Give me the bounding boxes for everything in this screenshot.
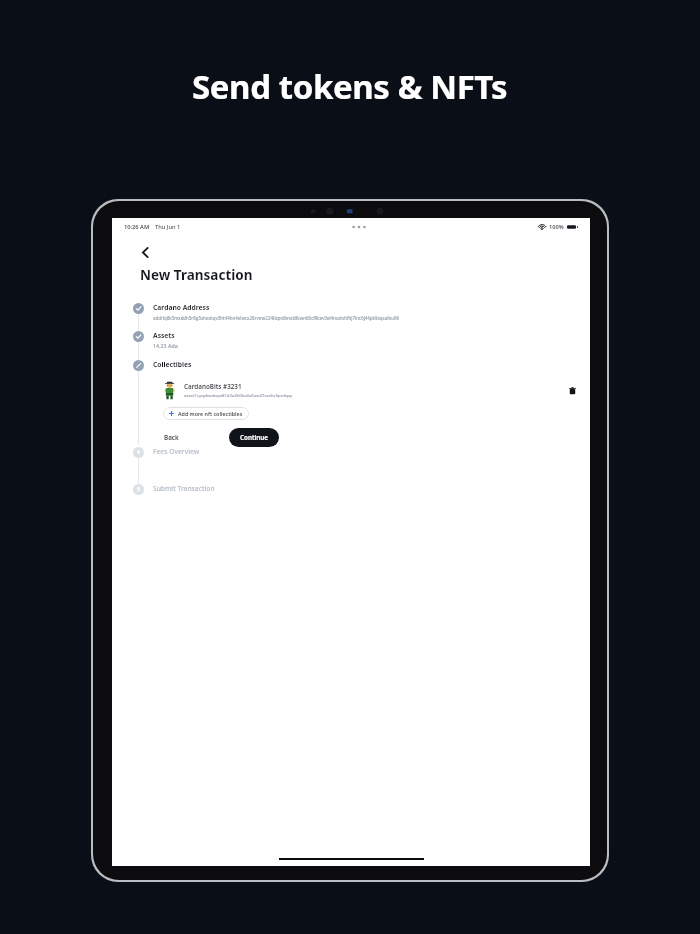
button[interactable]: Step	[133, 447, 144, 458]
staticText: Continue	[240, 433, 268, 442]
staticText: 14.23 Ada	[153, 342, 178, 349]
staticText: Assets	[153, 331, 175, 340]
staticText: CardanoBits #3231	[184, 382, 242, 391]
staticText: Back	[164, 433, 179, 442]
staticText: Collectibles	[153, 360, 192, 369]
staticText: 10:26 AM	[124, 223, 150, 231]
button[interactable]: Step	[133, 360, 144, 371]
staticText: 100%	[549, 223, 564, 231]
button[interactable]: Continue	[229, 428, 279, 447]
staticText: Add more nft collectibles	[178, 410, 243, 417]
button[interactable]: Step	[133, 484, 144, 495]
staticText: asset1cyqzkwdzqw81d2a2h0kcdu6uw27xzxhc5p…	[184, 393, 293, 399]
staticText: Send tokens & NFTs	[192, 64, 508, 109]
button[interactable]: Step	[133, 303, 144, 314]
button[interactable]: Step	[133, 331, 144, 342]
button[interactable]: CardanoBits #3231	[153, 381, 590, 400]
button[interactable]: Back	[163, 430, 180, 445]
staticText: New Transaction	[140, 266, 253, 284]
staticText: 4	[137, 449, 140, 456]
staticText: Submit Transaction	[153, 484, 215, 493]
staticText: Fees Overview	[153, 447, 200, 456]
button[interactable]: Delete collectible	[564, 383, 580, 399]
button[interactable]: Back	[133, 240, 157, 264]
staticText: 5	[137, 486, 140, 493]
staticText: Cardano Address	[153, 303, 210, 312]
staticText: addrlq8k5mxddh5r8g5shxskqv3ht44hn4xlwcx2…	[153, 315, 399, 321]
button[interactable]: Add more nft collectibles	[163, 407, 249, 420]
staticText: Thu Jun 1	[155, 223, 181, 231]
